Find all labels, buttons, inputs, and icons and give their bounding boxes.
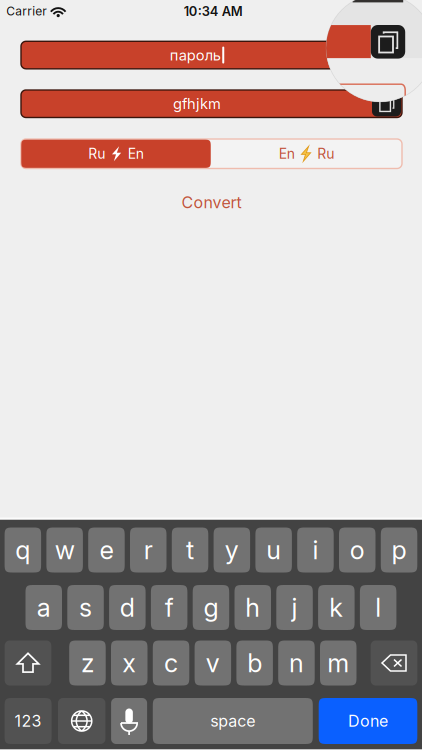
staticText: b	[247, 648, 262, 678]
staticText: z	[81, 648, 94, 678]
staticText: p	[392, 535, 407, 565]
button[interactable]: k	[318, 585, 355, 630]
button[interactable]: Ru	[21, 140, 211, 168]
button[interactable]: s	[67, 585, 104, 630]
staticText: y	[225, 535, 239, 565]
staticText: Ru	[88, 145, 105, 162]
staticText: Done	[348, 711, 388, 731]
button[interactable]: i	[297, 527, 334, 572]
button[interactable]: Shift	[5, 640, 51, 685]
staticText: f	[165, 592, 174, 623]
staticText: h	[245, 592, 260, 623]
button[interactable]: Copy	[372, 91, 401, 116]
staticText: e	[99, 535, 113, 565]
staticText: Convert	[181, 193, 241, 212]
button[interactable]: c	[153, 640, 189, 685]
staticText: k	[329, 592, 343, 623]
button[interactable]: u	[255, 527, 292, 572]
staticText: d	[120, 592, 135, 623]
staticText: l	[375, 592, 381, 623]
button[interactable]: p	[381, 527, 417, 572]
button[interactable]: f	[151, 585, 187, 630]
staticText: a	[37, 592, 51, 623]
staticText: space	[210, 711, 255, 731]
button[interactable]: n	[278, 640, 315, 685]
button[interactable]: m	[320, 640, 356, 685]
staticText: x	[122, 648, 136, 678]
button[interactable]: a	[25, 585, 62, 630]
button[interactable]: o	[339, 527, 375, 572]
staticText: m	[327, 648, 349, 678]
staticText: Carrier	[6, 4, 47, 18]
staticText: c	[164, 648, 178, 678]
staticText: s	[79, 592, 92, 623]
button[interactable]: space	[153, 698, 313, 744]
staticText: r	[144, 535, 153, 565]
staticText: 123	[15, 711, 42, 731]
button[interactable]: Convert	[151, 188, 271, 216]
staticText: gfhjkm	[173, 95, 221, 113]
button[interactable]: d	[109, 585, 146, 630]
button[interactable]: l	[360, 585, 396, 630]
staticText: v	[206, 648, 220, 678]
button[interactable]: j	[276, 585, 313, 630]
button[interactable]: t	[172, 527, 208, 572]
button[interactable]: Next keyboard	[58, 698, 105, 744]
staticText: j	[291, 592, 297, 623]
button[interactable]: Done	[319, 698, 417, 744]
button[interactable]: x	[111, 640, 147, 685]
button[interactable]: b	[236, 640, 273, 685]
staticText: w	[55, 535, 75, 565]
button[interactable]: r	[130, 527, 166, 572]
staticText: n	[289, 648, 304, 678]
button[interactable]: z	[69, 640, 106, 685]
staticText: En	[279, 145, 295, 162]
button[interactable]: 123	[5, 698, 52, 744]
button[interactable]: h	[234, 585, 271, 630]
staticText: i	[312, 535, 318, 565]
staticText: Ru	[317, 145, 334, 162]
button[interactable]: y	[214, 527, 250, 572]
button[interactable]: q	[5, 527, 41, 572]
button[interactable]: Copy	[372, 42, 401, 68]
staticText: q	[15, 535, 30, 565]
staticText: u	[266, 535, 281, 565]
staticText: t	[186, 535, 194, 565]
button[interactable]: Delete	[371, 640, 417, 685]
staticText: g	[203, 592, 218, 623]
button[interactable]: Dictation	[111, 698, 147, 744]
button[interactable]: w	[46, 527, 83, 572]
button[interactable]: g	[193, 585, 229, 630]
staticText: пароль	[170, 46, 221, 64]
button[interactable]: e	[88, 527, 125, 572]
staticText: En	[128, 145, 144, 162]
staticText: o	[350, 535, 365, 565]
staticText: 10:34 AM	[184, 3, 243, 19]
button[interactable]: v	[195, 640, 231, 685]
button[interactable]: En	[212, 140, 401, 168]
